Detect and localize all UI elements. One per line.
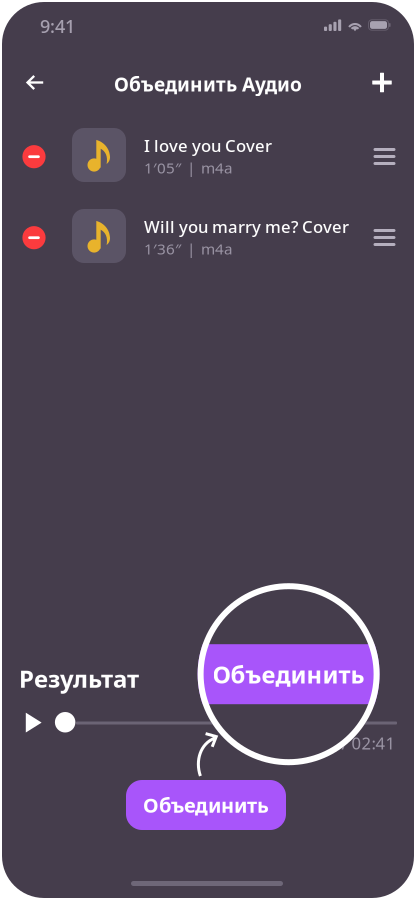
button[interactable]: Объединить bbox=[198, 644, 380, 704]
staticText: m4a bbox=[201, 238, 233, 259]
staticText: Объединить Аудио bbox=[114, 71, 302, 97]
staticText: 1′05″ bbox=[144, 157, 181, 178]
button[interactable]: Reorder bbox=[373, 229, 395, 246]
staticText: m4a bbox=[201, 157, 233, 178]
staticText: I love you Cover bbox=[144, 134, 272, 157]
staticText: | bbox=[187, 157, 195, 178]
staticText: Объединить bbox=[213, 658, 365, 690]
button[interactable]: Reorder bbox=[373, 148, 395, 165]
button[interactable]: Add bbox=[372, 73, 392, 92]
button[interactable]: Play bbox=[25, 712, 42, 733]
button[interactable]: Remove bbox=[22, 226, 46, 249]
button[interactable]: Объединить bbox=[126, 780, 286, 830]
staticText: 00:00 / 02:41 bbox=[293, 732, 395, 754]
button[interactable]: Remove bbox=[22, 145, 46, 168]
staticText: Результат bbox=[19, 662, 139, 695]
button[interactable]: Back bbox=[26, 74, 44, 90]
staticText: 1′36″ bbox=[144, 238, 181, 259]
staticText: 9:41 bbox=[40, 14, 75, 38]
staticText: Объединить bbox=[143, 791, 269, 819]
staticText: | bbox=[187, 238, 195, 259]
staticText: Will you marry me? Cover bbox=[144, 215, 349, 238]
